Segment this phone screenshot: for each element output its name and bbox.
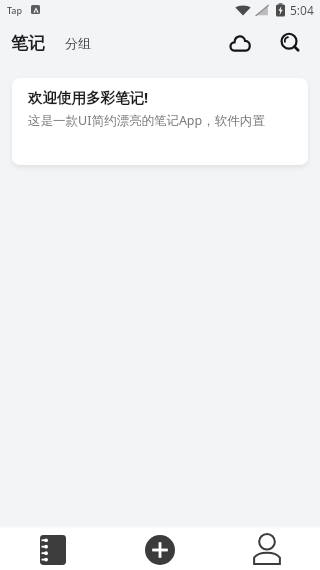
button[interactable]: 分组 <box>64 35 92 51</box>
staticText: Tap <box>7 4 23 16</box>
staticText: 分组 <box>65 35 91 51</box>
button[interactable]: 欢迎使用多彩笔记! <box>12 78 308 165</box>
staticText: 这是一款UI简约漂亮的笔记App，软件内置 <box>28 112 265 129</box>
button[interactable]: Profile <box>213 529 320 570</box>
staticText: 5:04 <box>290 2 314 18</box>
button[interactable]: Cloud sync <box>224 27 256 59</box>
button[interactable]: 笔记 <box>10 33 46 54</box>
staticText: 笔记 <box>11 33 45 54</box>
staticText: 欢迎使用多彩笔记! <box>28 87 149 107</box>
button[interactable]: Search <box>274 27 306 59</box>
button[interactable]: Add note <box>106 529 213 570</box>
button[interactable]: Notes <box>0 529 106 570</box>
